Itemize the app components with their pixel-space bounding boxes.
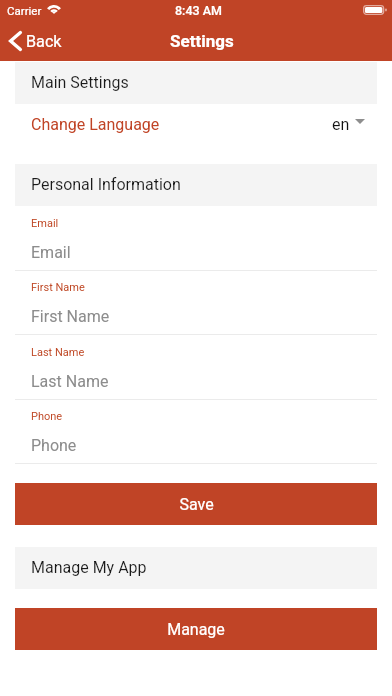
staticText: Email [31,217,59,230]
button[interactable]: Email [15,214,377,271]
staticText: Back [26,32,62,51]
staticText: First Name [31,307,110,326]
staticText: Personal Information [31,175,181,194]
staticText: en [332,115,350,134]
button[interactable]: Change Language [15,104,377,144]
staticText: Main Settings [31,73,129,92]
staticText: Last Name [31,346,85,359]
staticText: Change Language [31,115,160,134]
button[interactable]: First Name [15,278,377,335]
button[interactable]: Last Name [15,343,377,400]
button[interactable]: Save [15,483,377,525]
staticText: Email [31,243,71,262]
staticText: Phone [31,410,63,423]
staticText: 8:43 AM [175,3,222,18]
staticText: Carrier [7,4,42,17]
staticText: Settings [170,31,234,51]
button[interactable]: Manage [15,608,377,650]
staticText: Save [179,495,214,514]
staticText: Last Name [31,372,109,391]
staticText: Manage [167,620,225,639]
staticText: Manage My App [31,558,147,577]
staticText: First Name [31,281,85,294]
staticText: Phone [31,436,77,455]
button[interactable]: Back [4,27,74,57]
button[interactable]: Phone [15,407,377,464]
